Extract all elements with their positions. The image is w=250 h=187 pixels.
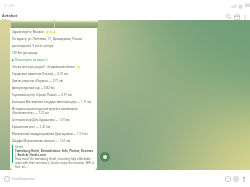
button[interactable]: Avtobot bbox=[2, 13, 225, 20]
staticText: 100 Km до города bbox=[12, 51, 38, 55]
button[interactable]: Calendar bbox=[233, 13, 241, 20]
staticText: Цветы открыты «Лариса» — 0.71 км bbox=[12, 79, 64, 83]
staticText: ⭐⭐⭐ bbox=[45, 30, 56, 33]
staticText: Городской памятник Ленину — 0.31 км bbox=[12, 72, 68, 76]
staticText: Avtobot bbox=[2, 13, 18, 18]
button[interactable]: Scroll to bottom bbox=[100, 152, 110, 162]
staticText: 11:20 bbox=[3, 3, 14, 9]
button[interactable]: Attach bbox=[224, 175, 232, 183]
button[interactable]: Voice message bbox=[240, 175, 248, 183]
staticText: Ерошенков инст — 1.41 км bbox=[12, 125, 51, 129]
button[interactable]: Photo bbox=[11, 20, 54, 28]
button[interactable]: Hotels bbox=[12, 145, 95, 168]
staticText: Сообщение bbox=[12, 176, 35, 181]
staticText: Шарфы Мороновская область — 1.61 км bbox=[12, 139, 70, 143]
staticText: Что же всё ещё рядом? - ближайший объект bbox=[12, 65, 76, 69]
staticText: достопримеч. 5 км от центра bbox=[12, 44, 54, 48]
staticText: ⭐ bbox=[76, 65, 81, 69]
staticText: ✔ bbox=[45, 58, 49, 62]
button[interactable]: Search bbox=[225, 13, 233, 20]
button[interactable]: Photo bbox=[55, 20, 98, 28]
staticText: Здравствуйте, Михаил bbox=[12, 30, 45, 34]
staticText: физкультурный сад — 0.82 км bbox=[12, 86, 55, 90]
staticText: Центральный Дом Художника — 1.31 км bbox=[12, 118, 70, 122]
staticText: bot bbox=[2, 18, 7, 20]
button[interactable]: More options bbox=[241, 13, 249, 20]
staticText: Twinsburg Hotel, Domodedovo: Info, Photo… bbox=[15, 149, 95, 157]
staticText: Большой Московский государственный цирк … bbox=[12, 100, 92, 104]
button[interactable]: Camera bbox=[232, 175, 240, 183]
staticText: Московский международный Дом музыки — 1.… bbox=[12, 132, 88, 136]
staticText: How much for twinsburg Hotel, including … bbox=[15, 157, 95, 168]
staticText: По адресу: ул. Лентевая, 17, Домодедово,… bbox=[12, 37, 83, 41]
button[interactable]: Здравствуйте, Михаил bbox=[10, 28, 97, 170]
button[interactable]: Emoji bbox=[3, 175, 11, 183]
staticText: Историко-архитектурный музей и заповедни… bbox=[12, 107, 95, 115]
staticText: Hotels bbox=[15, 145, 24, 149]
staticText: Торговый центр «Орехи Плаза» — 0.91 км bbox=[12, 93, 72, 97]
staticText: ▶️ Посмотреть на карте bbox=[12, 58, 45, 62]
